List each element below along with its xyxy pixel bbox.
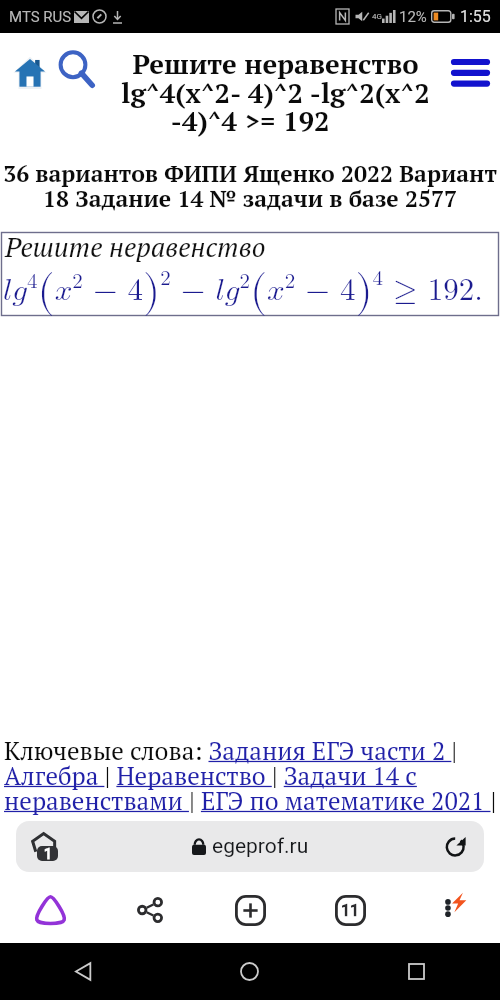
button[interactable]: Reload page xyxy=(428,821,484,872)
button[interactable]: Shield, 1 tracker blocked xyxy=(16,821,72,872)
button[interactable]: Recent apps xyxy=(333,943,500,1000)
staticText: Решите неравенство lg^4(x^2- 4)^2 -lg^2(… xyxy=(121,45,430,111)
staticText: 36 вариантов ФИПИ Ященко 2022 Вариант 18… xyxy=(2,158,498,213)
staticText: 1 xyxy=(44,846,52,861)
staticText: 4G xyxy=(372,12,382,21)
staticText: -4)^4 >= 192 xyxy=(170,102,330,138)
staticText: egeprof.ru xyxy=(212,834,309,859)
button[interactable]: Tabs, 11 open xyxy=(300,880,400,940)
staticText: MTS RUS xyxy=(9,8,72,26)
button[interactable]: Home xyxy=(166,943,333,1000)
button[interactable]: Shield, 1 tracker blocked xyxy=(16,821,484,872)
staticText: 11 xyxy=(341,901,360,920)
button[interactable]: More options xyxy=(400,880,500,940)
button[interactable]: New tab xyxy=(200,880,300,940)
button[interactable]: Share xyxy=(100,880,200,940)
staticText: 1:55 xyxy=(460,7,491,26)
staticText: 𝑙𝑔4(𝑥2 − 4)2 − 𝑙𝑔2(𝑥2 − 4)4 ≥ 192. xyxy=(3,268,483,314)
button[interactable]: Back xyxy=(0,943,166,1000)
button[interactable]: Open menu xyxy=(445,50,495,96)
staticText: Решите неравенство xyxy=(5,229,266,265)
staticText: Ключевые слова: Задания ЕГЭ части 2 | Ал… xyxy=(4,734,499,842)
button[interactable]: Home xyxy=(9,50,51,94)
button[interactable]: Brave shields xyxy=(0,880,100,940)
button[interactable]: Search xyxy=(53,46,101,94)
staticText: 12% xyxy=(399,8,427,26)
